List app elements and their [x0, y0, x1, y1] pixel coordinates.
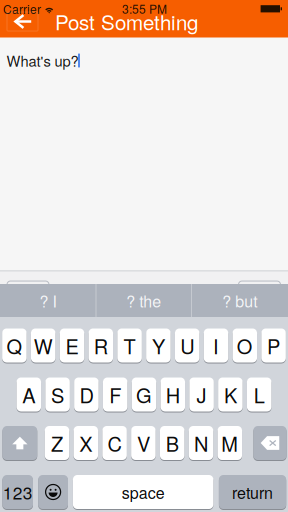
- staticText: F: [109, 380, 121, 409]
- button[interactable]: J: [189, 377, 214, 412]
- staticText: ? but: [222, 289, 257, 312]
- staticText: J: [197, 380, 207, 409]
- staticText: What's up?: [6, 50, 78, 71]
- staticText: 3:55 PM: [122, 0, 167, 17]
- button[interactable]: O: [233, 328, 257, 363]
- staticText: ? I: [39, 289, 56, 312]
- staticText: N: [194, 429, 208, 457]
- staticText: Post Something: [55, 6, 198, 36]
- button[interactable]: Y: [146, 328, 171, 363]
- staticText: Z: [51, 429, 63, 457]
- staticText: K: [224, 380, 237, 409]
- button[interactable]: N: [189, 425, 213, 460]
- button[interactable]: M: [218, 425, 242, 460]
- button[interactable]: V: [131, 425, 156, 460]
- staticText: E: [65, 331, 78, 360]
- staticText: H: [166, 380, 180, 409]
- staticText: return: [232, 480, 273, 503]
- button[interactable]: W: [31, 328, 55, 363]
- button[interactable]: H: [161, 377, 185, 412]
- staticText: M: [221, 429, 238, 457]
- button[interactable]: Z: [45, 425, 69, 460]
- staticText: Carrier: [3, 0, 41, 17]
- staticText: T: [124, 331, 136, 360]
- button[interactable]: ? I: [0, 284, 96, 317]
- button[interactable]: E: [60, 328, 84, 363]
- staticText: U: [180, 331, 194, 360]
- staticText: D: [79, 380, 93, 409]
- button[interactable]: D: [74, 377, 99, 412]
- staticText: G: [136, 380, 152, 409]
- staticText: O: [237, 331, 253, 360]
- staticText: R: [94, 331, 108, 360]
- button[interactable]: X: [73, 425, 98, 460]
- button[interactable]: I: [204, 328, 228, 363]
- staticText: B: [166, 429, 179, 457]
- button[interactable]: Shift: [2, 425, 37, 460]
- button[interactable]: T: [117, 328, 142, 363]
- staticText: X: [79, 429, 92, 457]
- staticText: C: [108, 429, 122, 457]
- staticText: W: [34, 331, 53, 360]
- button[interactable]: U: [175, 328, 199, 363]
- button[interactable]: space: [73, 474, 213, 509]
- staticText: P: [267, 331, 280, 360]
- staticText: V: [137, 429, 150, 457]
- button[interactable]: P: [261, 328, 286, 363]
- button[interactable]: A: [16, 377, 41, 412]
- staticText: I: [213, 331, 219, 360]
- button[interactable]: S: [45, 377, 70, 412]
- staticText: 123: [3, 480, 33, 504]
- button[interactable]: 123: [2, 474, 33, 509]
- button[interactable]: Emoji keyboard: [38, 474, 68, 509]
- button[interactable]: Back: [7, 12, 38, 31]
- button[interactable]: L: [247, 377, 271, 412]
- staticText: ? the: [126, 289, 161, 312]
- button[interactable]: ? but: [191, 284, 288, 317]
- button[interactable]: R: [89, 328, 113, 363]
- button[interactable]: G: [132, 377, 156, 412]
- button[interactable]: return: [219, 474, 286, 509]
- button[interactable]: ? the: [96, 284, 191, 317]
- staticText: space: [122, 480, 165, 503]
- button[interactable]: K: [218, 377, 243, 412]
- staticText: S: [51, 380, 64, 409]
- staticText: A: [22, 380, 35, 409]
- button[interactable]: B: [160, 425, 184, 460]
- staticText: L: [254, 380, 265, 409]
- staticText: Q: [6, 331, 22, 360]
- button[interactable]: F: [103, 377, 127, 412]
- button[interactable]: C: [102, 425, 127, 460]
- button[interactable]: Delete: [253, 425, 287, 460]
- button[interactable]: Q: [2, 328, 27, 363]
- staticText: Y: [152, 331, 165, 360]
